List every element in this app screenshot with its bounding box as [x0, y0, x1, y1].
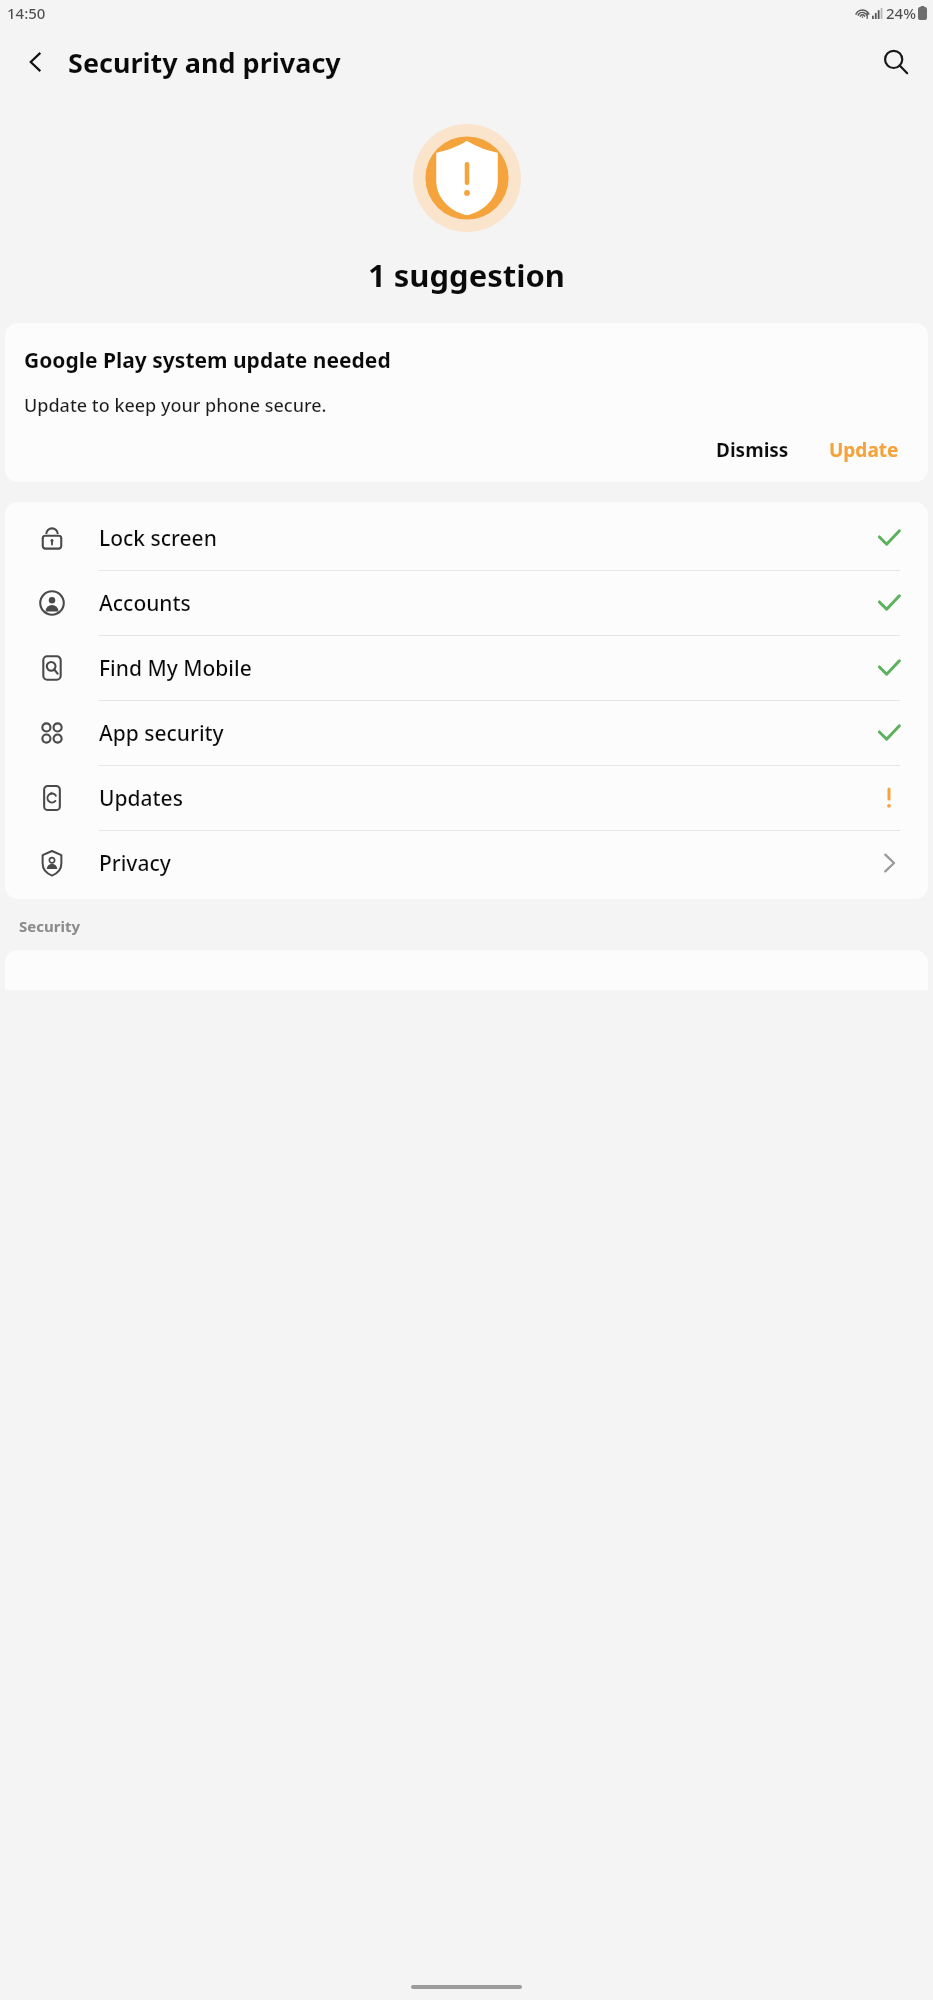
- staticText: App security: [99, 719, 850, 748]
- staticText: Security and privacy: [68, 44, 341, 81]
- button[interactable]: Find My Mobile: [5, 636, 928, 701]
- staticText: Find My Mobile: [99, 654, 850, 683]
- staticText: Security: [19, 916, 80, 936]
- button[interactable]: Lock screen: [5, 506, 928, 571]
- button[interactable]: Dismiss: [706, 429, 799, 471]
- button[interactable]: Update: [819, 429, 909, 471]
- button[interactable]: Updates: [5, 766, 928, 831]
- button[interactable]: Back: [10, 36, 62, 88]
- button[interactable]: App security: [5, 701, 928, 766]
- button[interactable]: Accounts: [5, 571, 928, 636]
- staticText: Lock screen: [99, 524, 850, 553]
- button[interactable]: Privacy: [5, 831, 928, 895]
- staticText: 1 suggestion: [0, 254, 933, 296]
- staticText: Update to keep your phone secure.: [24, 393, 327, 418]
- staticText: Google Play system update needed: [24, 346, 391, 375]
- staticText: Accounts: [99, 589, 850, 618]
- staticText: Dismiss: [716, 437, 789, 463]
- button[interactable]: Search: [870, 36, 922, 88]
- staticText: 24%: [886, 3, 916, 23]
- staticText: Update: [829, 437, 899, 463]
- staticText: Privacy: [99, 849, 850, 878]
- staticText: 14:50: [7, 3, 46, 23]
- staticText: Updates: [99, 784, 850, 813]
